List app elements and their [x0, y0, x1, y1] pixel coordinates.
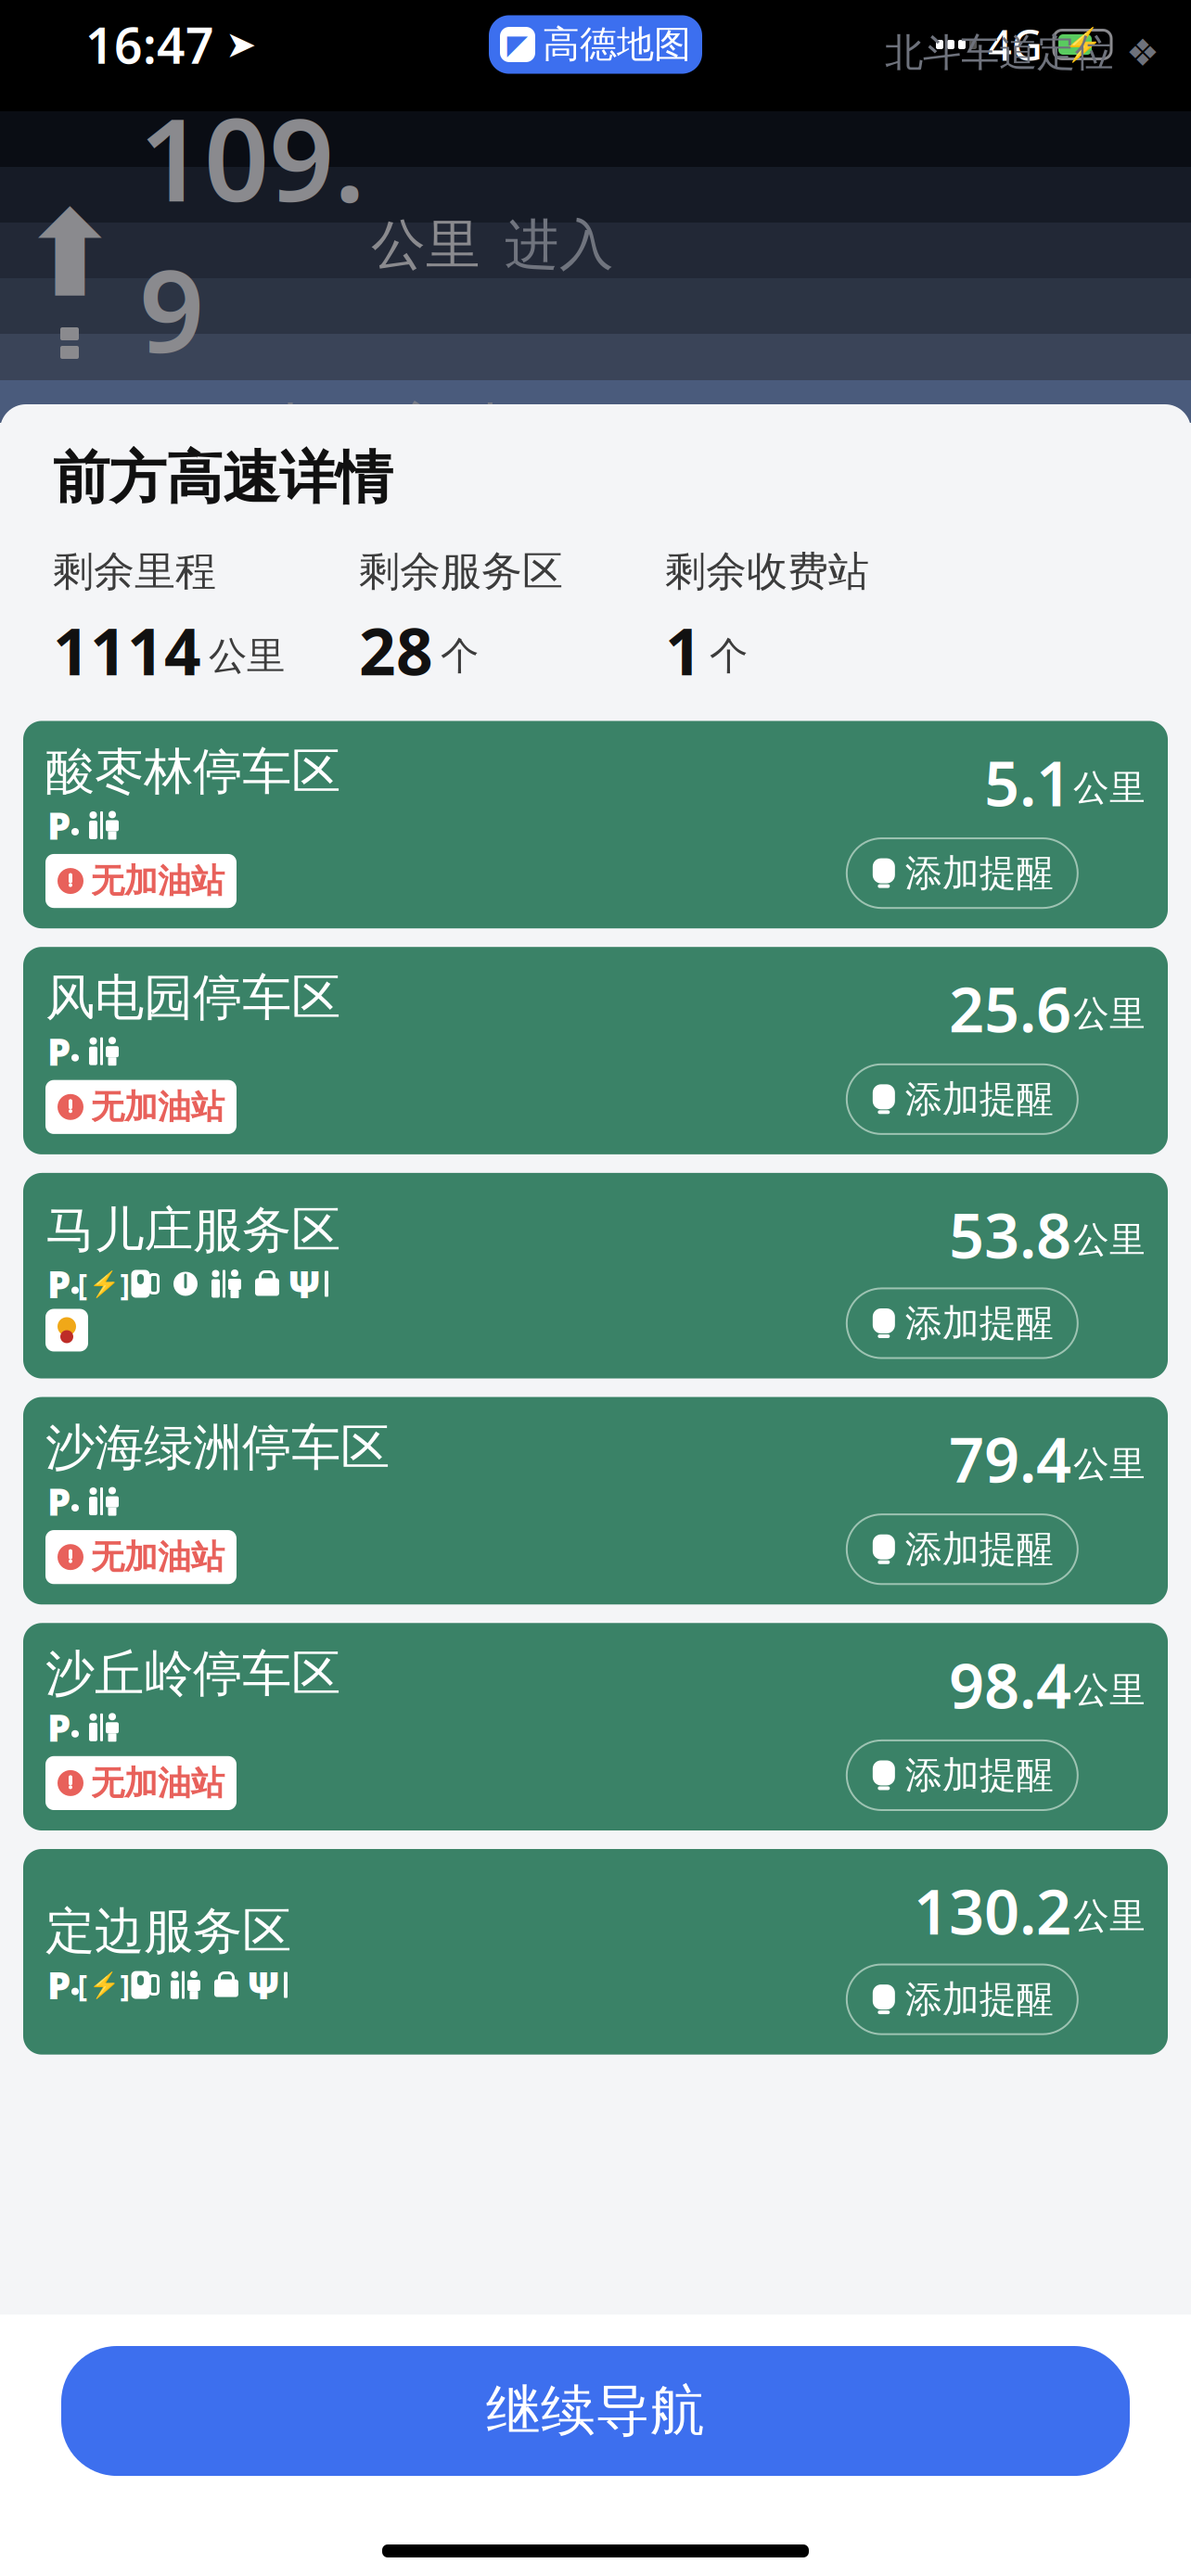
staticText: ] — [120, 1264, 130, 1303]
button[interactable]: 添加提醒 — [847, 838, 1078, 908]
button[interactable]: 风电园停车区 — [23, 947, 1168, 1154]
staticText: 北斗车道定位 — [885, 29, 1113, 76]
staticText: 公里 — [1073, 1894, 1146, 1938]
staticText: 130.2 — [914, 1869, 1071, 1951]
staticText: Ψ — [247, 1960, 280, 2010]
staticText: P — [47, 1960, 70, 2010]
button[interactable]: 沙海绿洲停车区 — [23, 1397, 1168, 1604]
staticText: 添加提醒 — [905, 1300, 1054, 1346]
staticText: ] — [120, 1965, 130, 2005]
staticText: ❖ — [1126, 32, 1159, 74]
staticText: 个 — [710, 632, 748, 680]
staticText: 25.6 — [949, 967, 1071, 1049]
staticText: 定边服务区 — [45, 1901, 291, 1962]
staticText: P — [47, 1027, 70, 1076]
staticText: 马儿庄服务区 — [45, 1200, 340, 1261]
button[interactable]: 添加提醒 — [847, 1740, 1078, 1810]
staticText: 公里 — [1073, 1442, 1146, 1486]
button[interactable]: 继续导航 — [61, 2346, 1130, 2476]
staticText: 无加油站 — [91, 1087, 224, 1127]
button[interactable]: 添加提醒 — [847, 1064, 1078, 1134]
staticText: [ — [77, 1965, 88, 2005]
staticText: 4G — [988, 17, 1043, 72]
staticText: 1 — [665, 608, 702, 693]
staticText: 公里 — [209, 632, 285, 680]
staticText: 公里 — [1073, 766, 1146, 810]
staticText: ⚡ — [89, 1270, 119, 1298]
staticText: 28 — [359, 608, 433, 693]
staticText: ⬆ — [20, 187, 119, 322]
staticText: ➤ — [225, 23, 257, 66]
staticText: P — [47, 1259, 70, 1308]
staticText: 风电园停车区 — [45, 967, 340, 1028]
staticText: 98.4 — [949, 1643, 1071, 1725]
button[interactable]: 添加提醒 — [847, 1288, 1078, 1358]
staticText: 添加提醒 — [905, 1076, 1054, 1122]
staticText: 添加提醒 — [905, 850, 1054, 896]
staticText: 高德地图 — [543, 22, 691, 67]
staticText: P — [47, 1477, 70, 1526]
staticText: [ — [77, 1264, 88, 1303]
staticText: ◤ — [507, 29, 528, 60]
staticText: 公里 — [1073, 1668, 1146, 1712]
button[interactable]: 添加提醒 — [847, 1964, 1078, 2034]
staticText: 公里 — [371, 212, 480, 278]
staticText: G20青银高速 — [139, 388, 516, 473]
staticText: 无加油站 — [91, 861, 224, 902]
staticText: Ψ — [288, 1259, 321, 1308]
staticText: 继续导航 — [486, 2378, 705, 2444]
staticText: 1114 — [53, 608, 201, 693]
staticText: ⚡ — [89, 1971, 119, 1999]
staticText: 53.8 — [949, 1193, 1071, 1275]
staticText: 进入 — [505, 212, 614, 278]
staticText: 公里 — [1073, 992, 1146, 1036]
staticText: 添加提醒 — [905, 1752, 1054, 1798]
staticText: 剩余服务区 — [359, 546, 563, 597]
staticText: 109.9 — [139, 82, 365, 384]
staticText: 个 — [441, 632, 479, 680]
staticText: 5.1 — [984, 741, 1071, 823]
staticText: P — [47, 801, 70, 850]
staticText: 剩余里程 — [53, 546, 216, 597]
staticText: P — [47, 1703, 70, 1752]
staticText: 79.4 — [949, 1417, 1071, 1500]
staticText: 沙丘岭停车区 — [45, 1643, 340, 1704]
staticText: 添加提醒 — [905, 1977, 1054, 2022]
staticText: 16:47 — [85, 12, 214, 77]
staticText: 前方高速详情 — [53, 443, 392, 513]
staticText: 酸枣林停车区 — [45, 741, 340, 802]
staticText: 剩余收费站 — [665, 546, 869, 597]
button[interactable]: 添加提醒 — [847, 1514, 1078, 1584]
staticText: 添加提醒 — [905, 1526, 1054, 1572]
staticText: 无加油站 — [91, 1763, 224, 1804]
button[interactable]: 沙丘岭停车区 — [23, 1623, 1168, 1830]
staticText: 公里 — [1073, 1218, 1146, 1262]
staticText: 沙海绿洲停车区 — [45, 1417, 390, 1478]
staticText: 无加油站 — [91, 1537, 224, 1578]
button[interactable]: 定边服务区 — [23, 1849, 1168, 2055]
button[interactable]: 酸枣林停车区 — [23, 721, 1168, 928]
staticText: ⚡ — [1063, 26, 1102, 63]
button[interactable]: 马儿庄服务区 — [23, 1173, 1168, 1379]
